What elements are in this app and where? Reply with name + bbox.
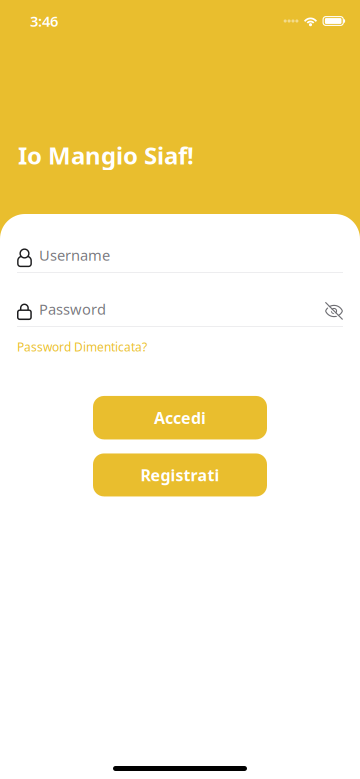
staticText: Accedi (154, 407, 206, 428)
button[interactable]: Username (0, 246, 360, 264)
button[interactable]: Accedi (93, 396, 267, 439)
button[interactable]: Show password (325, 300, 343, 318)
staticText: Registrati (140, 464, 219, 485)
staticText: Password (39, 299, 106, 319)
staticText: Password Dimenticata? (17, 339, 147, 355)
staticText: 3:46 (30, 11, 58, 31)
button[interactable]: Password (17, 300, 325, 318)
button[interactable]: Password Dimenticata? (0, 336, 164, 358)
staticText: Io Mangio Siaf! (18, 139, 194, 171)
button[interactable]: Registrati (93, 453, 267, 496)
staticText: Username (39, 245, 110, 265)
